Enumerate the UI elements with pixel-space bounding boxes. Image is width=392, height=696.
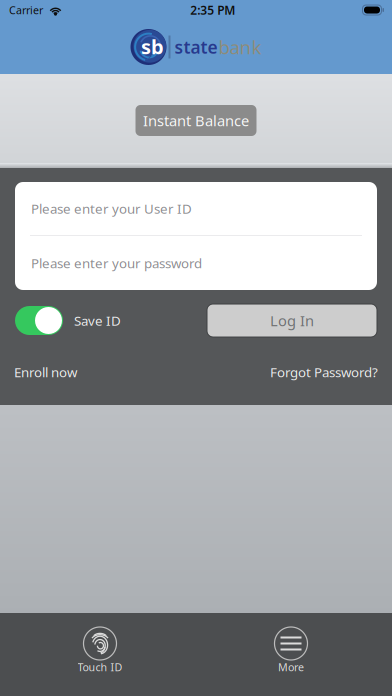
button[interactable]: Forgot Password?	[270, 363, 378, 381]
staticText: Forgot Password?	[270, 363, 378, 381]
staticText: 2:35 PM	[190, 2, 235, 18]
staticText: Log In	[270, 311, 314, 330]
staticText: Touch ID	[77, 660, 122, 674]
button[interactable]: More	[226, 627, 356, 682]
button[interactable]: Please enter your password	[15, 236, 377, 290]
button[interactable]: Log In	[207, 304, 377, 337]
button[interactable]: Please enter your User ID	[15, 182, 377, 235]
staticText: Please enter your password	[31, 254, 202, 272]
staticText: Please enter your User ID	[31, 200, 192, 217]
staticText: bank	[218, 35, 261, 59]
staticText: Carrier	[9, 3, 43, 17]
staticText: Enroll now	[14, 363, 77, 381]
staticText: sb	[141, 33, 164, 60]
button[interactable]: Instant Balance	[135, 105, 256, 136]
button[interactable]: Enroll now	[14, 363, 77, 381]
button[interactable]: Touch ID	[35, 627, 165, 682]
button[interactable]: Save ID	[15, 306, 121, 335]
staticText: More	[278, 660, 304, 674]
staticText: Save ID	[74, 312, 121, 329]
staticText: state	[174, 35, 217, 58]
staticText: Instant Balance	[143, 111, 249, 130]
